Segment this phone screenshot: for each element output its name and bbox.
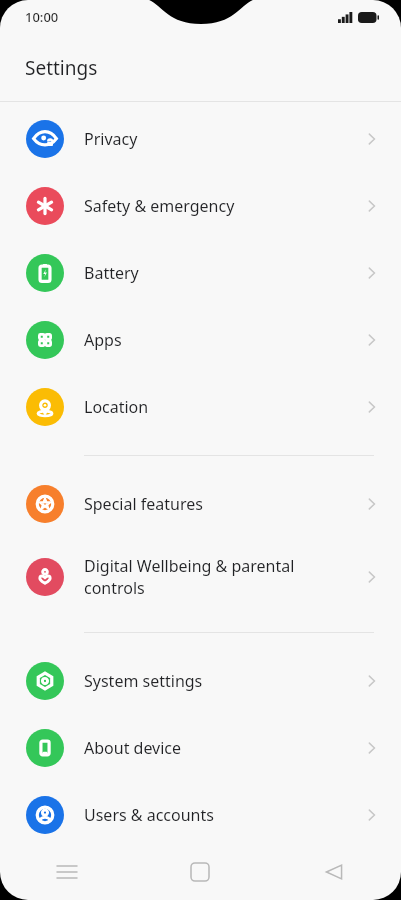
button[interactable]: Special features: [0, 470, 401, 537]
staticText: About device: [84, 737, 349, 759]
button[interactable]: Battery: [0, 239, 401, 306]
staticText: System settings: [84, 670, 349, 692]
button[interactable]: Digital Wellbeing & parental controls: [0, 537, 401, 617]
staticText: 10:00: [25, 8, 59, 26]
staticText: Special features: [84, 493, 349, 515]
staticText: Users & accounts: [84, 804, 349, 826]
button[interactable]: Recent apps: [0, 844, 133, 900]
button[interactable]: Apps: [0, 306, 401, 373]
staticText: Battery: [84, 262, 349, 284]
staticText: Location: [84, 396, 349, 418]
staticText: Privacy: [84, 128, 349, 150]
button[interactable]: System settings: [0, 647, 401, 714]
staticText: Digital Wellbeing & parental controls: [84, 555, 349, 599]
button[interactable]: About device: [0, 714, 401, 781]
button[interactable]: Safety & emergency: [0, 172, 401, 239]
button[interactable]: Home: [133, 844, 267, 900]
staticText: Apps: [84, 329, 349, 351]
button[interactable]: Users & accounts: [0, 781, 401, 848]
button[interactable]: Location: [0, 373, 401, 440]
button[interactable]: Privacy: [0, 105, 401, 172]
staticText: Safety & emergency: [84, 195, 349, 217]
button[interactable]: Back: [267, 844, 401, 900]
staticText: Settings: [25, 55, 98, 81]
